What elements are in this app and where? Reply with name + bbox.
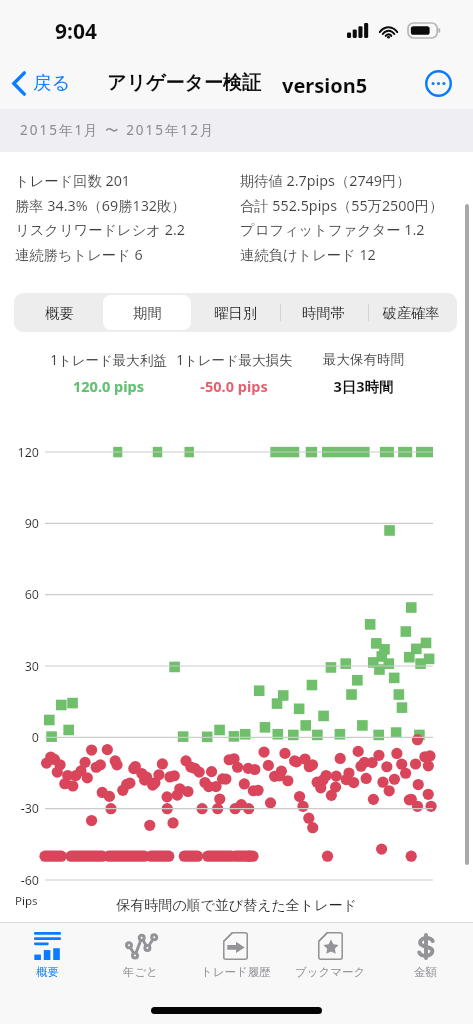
button[interactable]: 金額 [378, 927, 473, 989]
staticText: 120.0 pips [73, 376, 144, 396]
staticText: 60 [24, 586, 39, 603]
button[interactable]: 年ごと [94, 927, 188, 989]
staticText: 破産確率 [382, 304, 440, 322]
staticText: トレード回数 201 [15, 171, 131, 191]
staticText: ブックマーク [295, 965, 366, 979]
staticText: version5 [282, 72, 368, 99]
staticText: 年ごと [123, 965, 159, 979]
staticText: 期待値 2.7pips（2749円） [240, 171, 411, 191]
staticText: 連続負けトレード 12 [240, 245, 376, 265]
staticText: プロフィットファクター 1.2 [240, 220, 425, 240]
staticText: -30 [20, 800, 39, 817]
button[interactable]: 期間 [103, 295, 191, 330]
staticText: 3日3時間 [333, 376, 394, 396]
staticText: 金額 [414, 965, 437, 979]
button[interactable]: More options [418, 63, 458, 103]
button[interactable]: 時間帯 [279, 295, 367, 330]
staticText: トレード履歴 [201, 965, 271, 979]
staticText: 時間帯 [302, 304, 345, 322]
button[interactable]: 戻る [8, 67, 77, 100]
staticText: 2015年1月 〜 2015年12月 [20, 121, 216, 139]
staticText: 最大保有時間 [323, 351, 404, 368]
staticText: 曜日別 [214, 304, 257, 322]
staticText: 1トレード最大利益 [50, 351, 167, 369]
staticText: 120 [17, 444, 39, 461]
staticText: アリゲーター検証 [107, 71, 261, 95]
button[interactable]: 曜日別 [191, 295, 279, 330]
staticText: 合計 552.5pips（55万2500円） [240, 196, 444, 216]
staticText: 30 [24, 658, 39, 675]
staticText: 戻る [33, 71, 71, 94]
staticText: 1トレード最大損失 [176, 351, 293, 369]
staticText: -60 [20, 872, 39, 889]
staticText: Pips [15, 893, 38, 909]
button[interactable]: トレード履歴 [188, 927, 283, 989]
staticText: 概要 [36, 965, 59, 979]
button[interactable]: 概要 [0, 927, 94, 989]
staticText: リスクリワードレシオ 2.2 [15, 220, 185, 240]
button[interactable]: 概要 [16, 295, 103, 330]
staticText: 9:04 [55, 17, 97, 46]
staticText: 保有時間の順で並び替えた全トレード [0, 897, 473, 915]
staticText: 90 [24, 515, 39, 532]
staticText: 期間 [133, 304, 162, 322]
staticText: 概要 [45, 304, 74, 322]
staticText: -50.0 pips [200, 376, 268, 396]
staticText: 連続勝ちトレード 6 [15, 245, 143, 265]
staticText: 勝率 34.3%（69勝132敗） [15, 196, 186, 216]
staticText: 0 [31, 729, 39, 746]
button[interactable]: 破産確率 [367, 295, 455, 330]
button[interactable]: ブックマーク [283, 927, 378, 989]
